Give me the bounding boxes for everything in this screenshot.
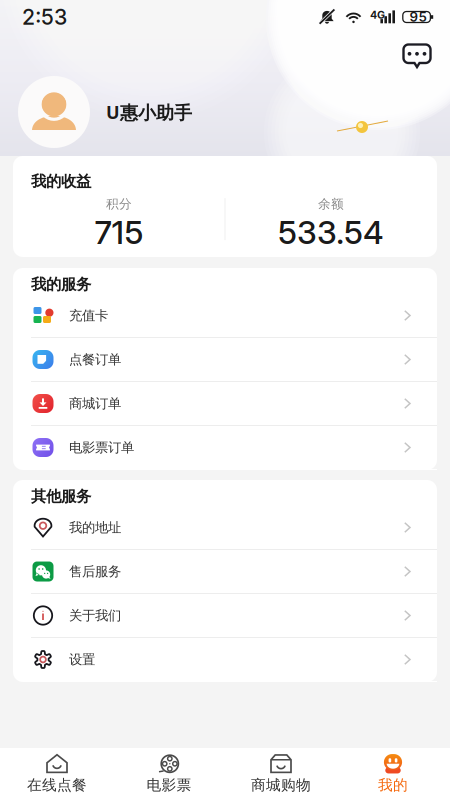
button[interactable]: 关于我们 — [13, 594, 437, 638]
button[interactable]: 商城订单 — [13, 382, 437, 426]
staticText: 售后服务 — [69, 563, 121, 580]
staticText: 充值卡 — [69, 307, 108, 324]
staticText: 电影票 — [146, 776, 191, 794]
staticText: 余额 — [318, 196, 344, 212]
staticText: 商城购物 — [251, 776, 311, 794]
staticText: 我的 — [378, 776, 408, 794]
staticText: 我的收益 — [31, 172, 91, 191]
button[interactable]: 我的地址 — [13, 506, 437, 550]
button[interactable]: Messages — [398, 39, 436, 73]
staticText: 其他服务 — [31, 487, 91, 506]
staticText: 电影票订单 — [69, 439, 134, 456]
button[interactable]: 我的 — [337, 748, 449, 800]
button[interactable]: 点餐订单 — [13, 338, 437, 382]
staticText: 我的地址 — [69, 519, 121, 536]
button[interactable]: 电影票订单 — [13, 426, 437, 470]
button[interactable]: 充值卡 — [13, 294, 437, 338]
staticText: 点餐订单 — [69, 351, 121, 368]
staticText: U惠小助手 — [106, 100, 192, 124]
staticText: 在线点餐 — [27, 776, 87, 794]
staticText: 我的服务 — [31, 275, 91, 294]
staticText: 95 — [409, 9, 426, 25]
staticText: 设置 — [69, 651, 95, 668]
button[interactable]: 在线点餐 — [1, 748, 113, 800]
staticText: 关于我们 — [69, 607, 121, 624]
button[interactable]: 商城购物 — [225, 748, 337, 800]
staticText: 积分 — [106, 196, 132, 212]
staticText: 533.54 — [278, 213, 384, 252]
button[interactable]: 设置 — [13, 638, 437, 682]
staticText: 715 — [94, 213, 143, 252]
staticText: 2:53 — [22, 4, 67, 30]
button[interactable]: 售后服务 — [13, 550, 437, 594]
staticText: 商城订单 — [69, 395, 121, 412]
staticText: 4G — [370, 8, 385, 21]
button[interactable]: 电影票 — [113, 748, 225, 800]
